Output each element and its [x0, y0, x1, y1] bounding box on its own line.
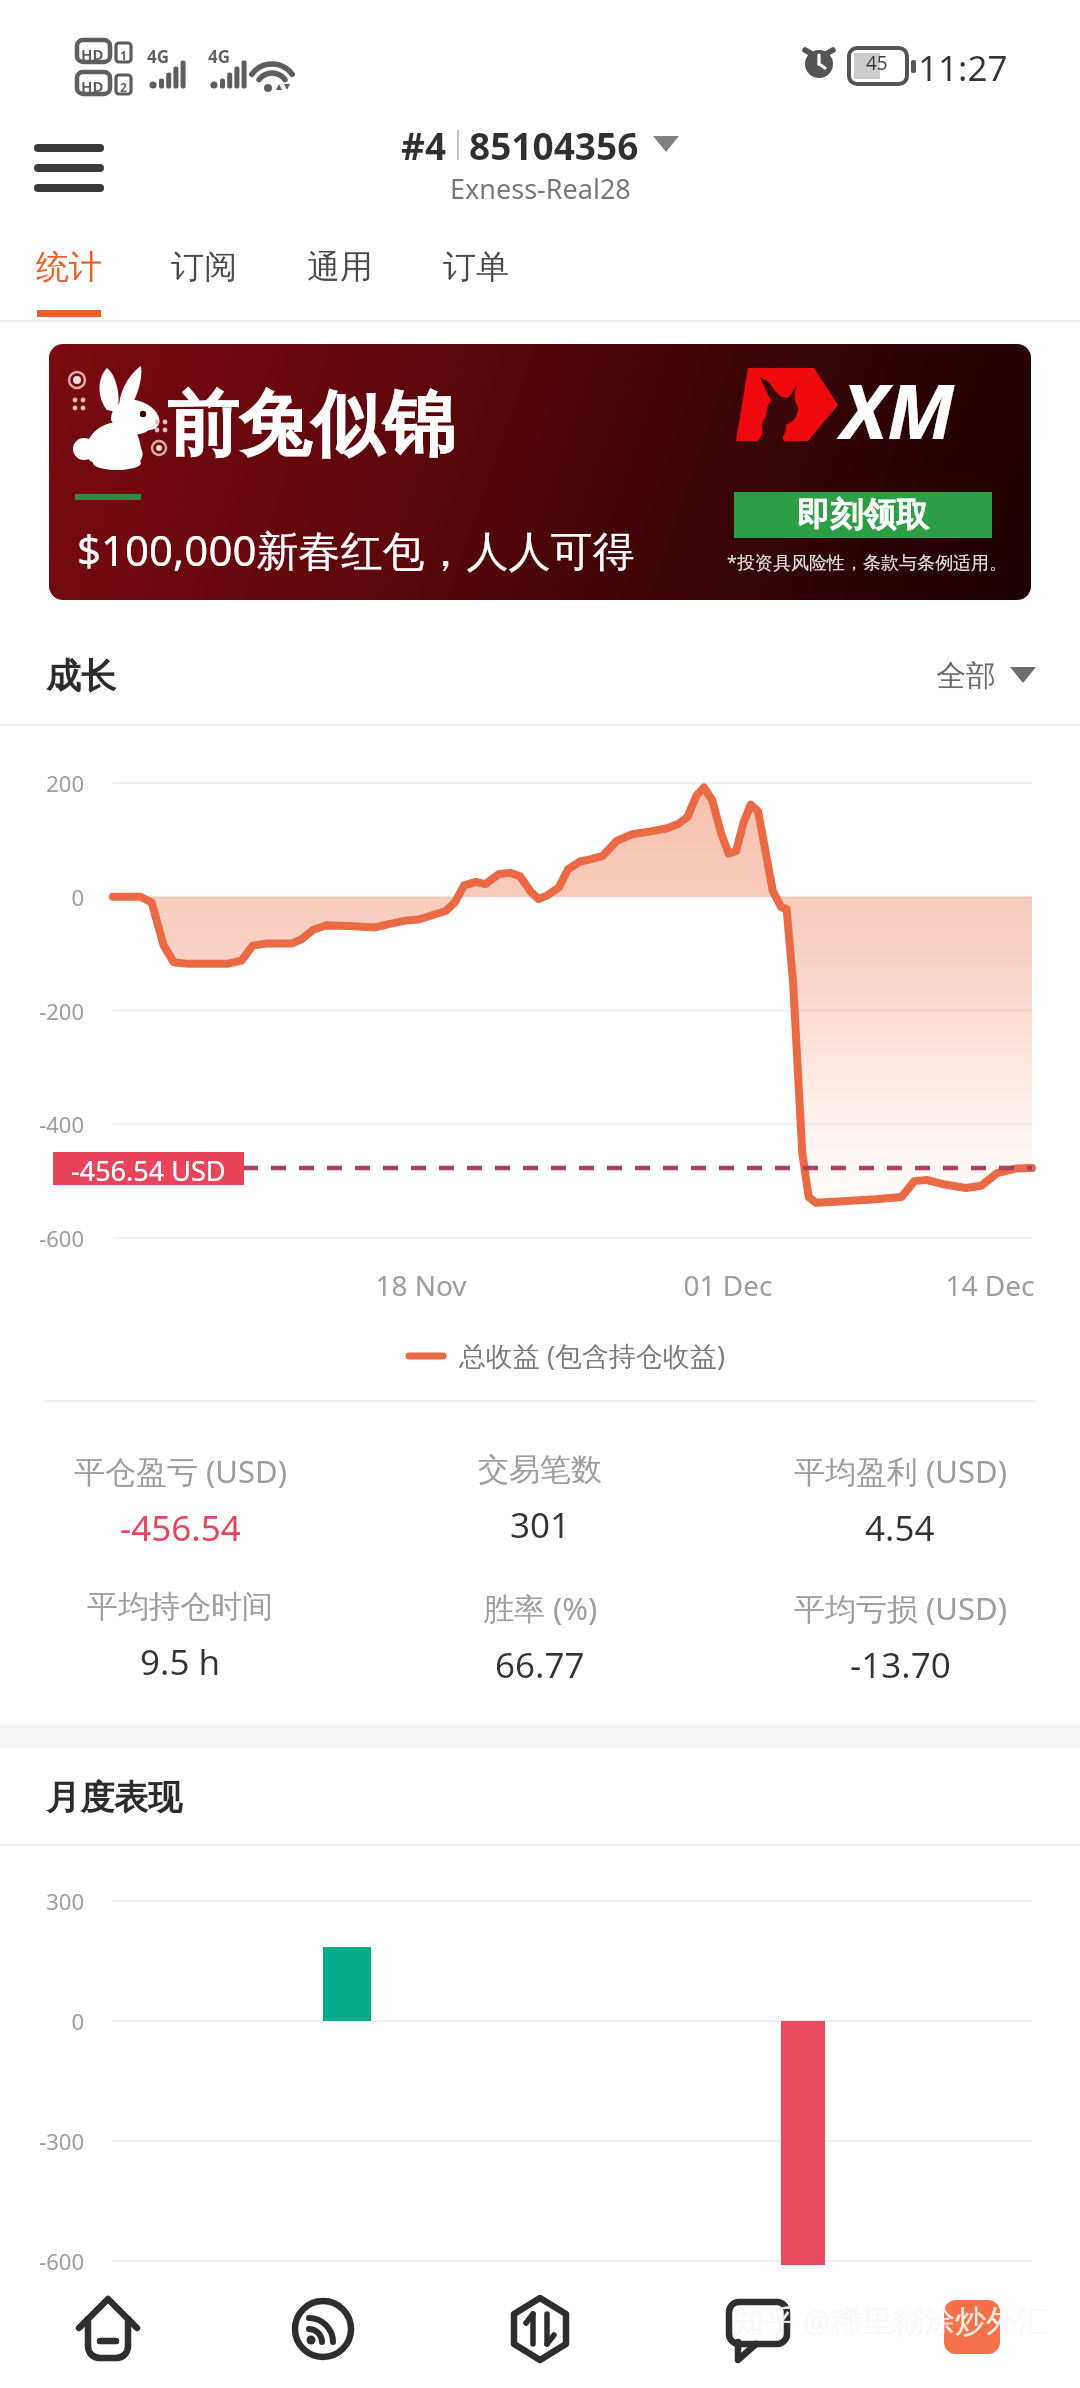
button[interactable]: Chat — [667, 2270, 847, 2388]
staticText: 01 Dec — [628, 1266, 828, 1304]
staticText: 66.77 — [495, 1641, 585, 1689]
staticText: $100,000新春红包，人人可得 — [77, 521, 635, 578]
staticText: -200 — [0, 996, 84, 1026]
staticText: 300 — [0, 1886, 84, 1916]
staticText: HD — [81, 44, 104, 64]
staticText: 2 — [120, 79, 127, 95]
staticText: -13.70 — [850, 1641, 951, 1689]
staticText: *投资具风险性，条款与条例适用。 — [717, 550, 1017, 575]
button[interactable]: 统计 — [1, 226, 137, 322]
staticText: 平仓盈亏 (USD) — [74, 1450, 287, 1492]
staticText: 11:27 — [918, 44, 1008, 92]
staticText: 平均持仓时间 — [87, 1587, 273, 1626]
staticText: 4G — [208, 45, 231, 68]
button[interactable]: Period filter — [936, 657, 1036, 695]
staticText: 18 Nov — [321, 1266, 521, 1304]
staticText: 9.5 h — [140, 1638, 221, 1686]
staticText: 总收益 (包含持仓收益) — [459, 1337, 726, 1374]
staticText: HD — [81, 76, 104, 96]
button[interactable]: 即刻领取 — [734, 492, 992, 538]
staticText: 301 — [510, 1501, 571, 1549]
button[interactable]: Home — [18, 2270, 198, 2388]
staticText: 通用 — [307, 246, 373, 288]
staticText: 订阅 — [171, 246, 237, 288]
staticText: -600 — [0, 1223, 84, 1253]
staticText: 成长 — [46, 654, 116, 698]
staticText: 1 — [120, 47, 127, 63]
staticText: 4G — [147, 45, 170, 68]
staticText: 知乎 @稀里糊涂炒外汇 — [733, 2299, 1048, 2341]
staticText: 月度表现 — [46, 1776, 182, 1819]
button[interactable]: 通用 — [272, 226, 408, 322]
button[interactable]: Trade — [450, 2270, 630, 2388]
staticText: Exness-Real28 — [450, 170, 631, 207]
staticText: 平均亏损 (USD) — [794, 1587, 1007, 1629]
button[interactable]: XM promotion banner — [49, 344, 1031, 600]
staticText: #4 — [401, 120, 447, 170]
button[interactable]: Menu — [24, 123, 114, 213]
staticText: 45 — [866, 50, 888, 76]
staticText: -456.54 — [120, 1504, 241, 1552]
staticText: 14 Dec — [900, 1266, 1080, 1304]
staticText: -456.54 USD — [71, 1152, 226, 1185]
staticText: 即刻领取 — [797, 494, 929, 536]
staticText: 交易笔数 — [478, 1450, 602, 1489]
staticText: 200 — [0, 768, 84, 798]
staticText: 4.54 — [865, 1504, 935, 1552]
staticText: -600 — [0, 2246, 84, 2276]
staticText: 全部 — [936, 657, 996, 695]
staticText: -300 — [0, 2126, 84, 2156]
staticText: -400 — [0, 1109, 84, 1139]
staticText: 85104356 — [469, 120, 639, 170]
staticText: 0 — [0, 2006, 84, 2036]
staticText: 订单 — [443, 246, 509, 288]
staticText: 平均盈利 (USD) — [794, 1450, 1007, 1492]
staticText: 统计 — [36, 246, 102, 288]
staticText: XM — [841, 358, 955, 462]
button[interactable]: 订单 — [408, 226, 544, 322]
staticText: 胜率 (%) — [483, 1587, 598, 1629]
button[interactable]: Signals — [233, 2270, 413, 2388]
staticText: 知乎 @稀里糊涂炒外汇 — [733, 2299, 1048, 2341]
staticText: 前兔似锦 — [167, 380, 455, 471]
button[interactable]: Account selector — [401, 120, 679, 207]
button[interactable]: 订阅 — [136, 226, 272, 322]
staticText: 0 — [0, 882, 84, 912]
